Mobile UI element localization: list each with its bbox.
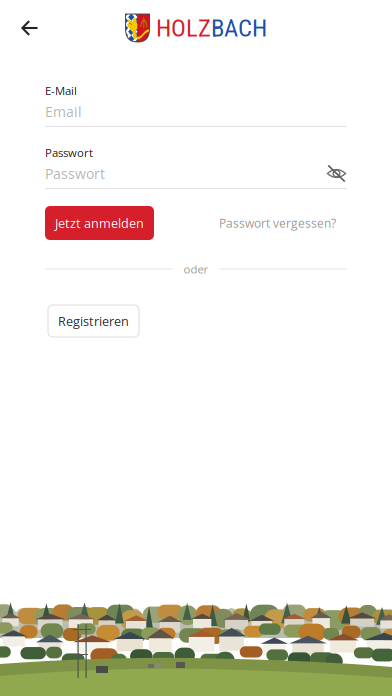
staticText: Passwort vergessen?: [219, 215, 336, 231]
staticText: Passwort: [45, 164, 105, 183]
button[interactable]: Show password: [326, 164, 347, 183]
staticText: oder: [183, 261, 208, 277]
button[interactable]: Jetzt anmelden: [45, 206, 154, 240]
staticText: Passwort: [45, 145, 93, 160]
staticText: Email: [45, 102, 82, 121]
staticText: BACH: [211, 13, 267, 42]
button[interactable]: Back: [8, 6, 52, 50]
staticText: Jetzt anmelden: [55, 214, 144, 232]
button[interactable]: Registrieren: [48, 305, 139, 337]
button[interactable]: Passwort vergessen?: [219, 206, 336, 240]
staticText: Registrieren: [58, 312, 129, 330]
staticText: E-Mail: [45, 83, 77, 98]
staticText: HOLZ: [156, 13, 211, 42]
